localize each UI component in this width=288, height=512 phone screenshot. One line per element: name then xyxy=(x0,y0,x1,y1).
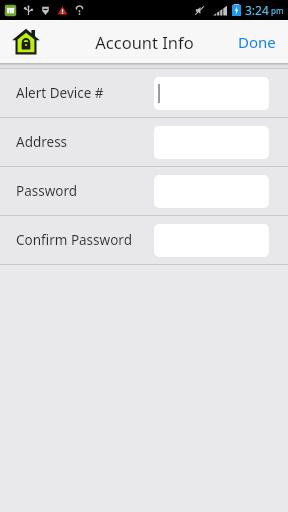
staticText: Confirm Password xyxy=(16,231,154,249)
button[interactable]: Done xyxy=(226,20,288,63)
button[interactable]: Password xyxy=(0,167,288,215)
staticText: Password xyxy=(16,182,154,200)
staticText: Done xyxy=(238,32,276,52)
staticText: Account Info xyxy=(95,31,194,53)
staticText: Address xyxy=(16,133,154,151)
staticText: pm xyxy=(271,5,284,16)
staticText: Alert Device # xyxy=(16,84,154,102)
button[interactable] xyxy=(154,77,269,110)
button[interactable]: Address xyxy=(0,118,288,166)
button[interactable]: Alert Device # xyxy=(0,69,288,117)
staticText: 3:24 xyxy=(245,2,269,18)
button[interactable]: Confirm Password xyxy=(0,216,288,264)
button[interactable]: Home security xyxy=(8,24,44,60)
